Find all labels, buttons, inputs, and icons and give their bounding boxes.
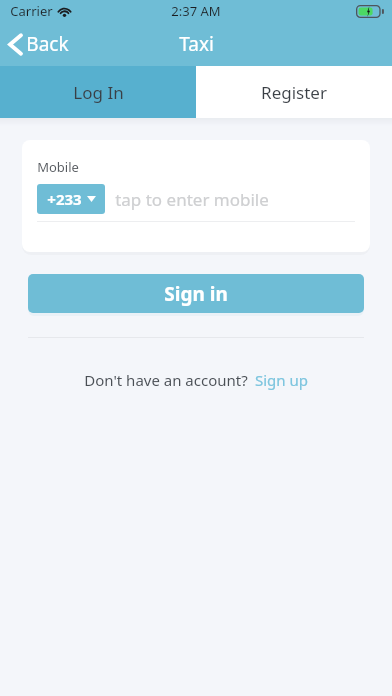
staticText: Taxi <box>179 31 214 57</box>
staticText: Carrier <box>10 2 53 20</box>
staticText: Don't have an account? <box>84 370 248 390</box>
button[interactable]: Sign in <box>28 274 364 313</box>
button[interactable]: Sign up <box>255 370 308 390</box>
staticText: 2:37 AM <box>171 2 221 20</box>
staticText: Log In <box>73 81 124 104</box>
staticText: Mobile <box>37 158 79 176</box>
button[interactable]: Register <box>196 66 392 118</box>
staticText: tap to enter mobile <box>115 188 269 211</box>
button[interactable]: Back <box>0 25 79 63</box>
staticText: Sign up <box>255 370 308 390</box>
staticText: Register <box>261 81 327 104</box>
staticText: Sign in <box>164 281 228 307</box>
staticText: +233 <box>47 189 82 209</box>
button[interactable]: Log In <box>0 66 196 118</box>
button[interactable]: +233 <box>37 184 105 214</box>
staticText: Back <box>26 31 69 57</box>
